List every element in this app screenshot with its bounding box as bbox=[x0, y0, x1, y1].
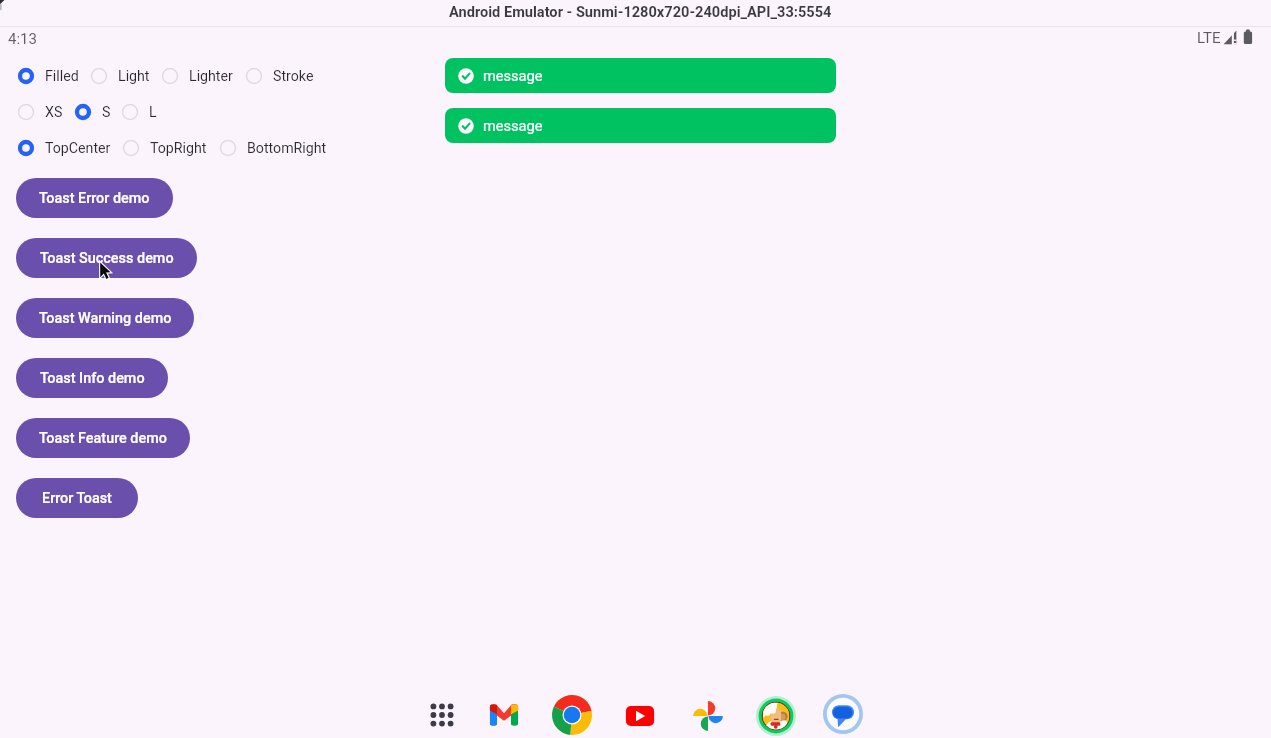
staticText: 4:13 bbox=[8, 30, 37, 48]
button[interactable]: Toast Success demo bbox=[16, 238, 197, 278]
staticText: TopRight bbox=[150, 140, 207, 157]
staticText: Android Emulator - Sunmi-1280x720-240dpi… bbox=[449, 3, 832, 20]
button[interactable]: Error Toast bbox=[16, 478, 138, 518]
button[interactable]: Messages bbox=[817, 688, 869, 738]
staticText: Filled bbox=[45, 68, 79, 85]
button[interactable]: TopCenter bbox=[15, 137, 111, 159]
button[interactable]: Chrome bbox=[546, 689, 598, 738]
staticText: Light bbox=[118, 68, 150, 85]
button[interactable]: All apps bbox=[416, 689, 468, 738]
button[interactable]: message bbox=[445, 108, 836, 143]
staticText: Toast Error demo bbox=[39, 190, 150, 207]
button[interactable]: Photos bbox=[682, 690, 734, 738]
staticText: Toast Feature demo bbox=[39, 430, 167, 447]
button[interactable]: XS bbox=[15, 101, 63, 123]
other: Battery bbox=[1243, 29, 1254, 45]
button[interactable]: Filled bbox=[15, 65, 79, 87]
staticText: Toast Info demo bbox=[40, 370, 145, 387]
staticText: Toast Warning demo bbox=[39, 310, 172, 327]
staticText: TopCenter bbox=[45, 140, 111, 157]
staticText: message bbox=[483, 67, 543, 84]
staticText: S bbox=[102, 104, 111, 121]
staticText: XS bbox=[45, 104, 63, 121]
button[interactable]: BottomRight bbox=[217, 137, 327, 159]
staticText: LTE bbox=[1197, 29, 1221, 47]
button[interactable]: Toast Warning demo bbox=[16, 298, 194, 338]
button[interactable]: message bbox=[445, 58, 836, 93]
button[interactable]: TopRight bbox=[120, 137, 207, 159]
staticText: Error Toast bbox=[42, 490, 112, 507]
other: Mobile signal bbox=[1223, 29, 1238, 45]
staticText: Stroke bbox=[273, 68, 314, 85]
button[interactable]: Light bbox=[88, 65, 150, 87]
button[interactable]: Lighter bbox=[159, 65, 233, 87]
staticText: L bbox=[149, 104, 157, 121]
button[interactable]: Toast Info demo bbox=[16, 358, 168, 398]
staticText: Lighter bbox=[189, 68, 233, 85]
button[interactable]: L bbox=[119, 101, 157, 123]
button[interactable]: Cooking game bbox=[750, 690, 802, 738]
staticText: Toast Success demo bbox=[40, 250, 174, 267]
button[interactable]: Toast Error demo bbox=[16, 178, 173, 218]
button[interactable]: Toast Feature demo bbox=[16, 418, 190, 458]
button[interactable]: Stroke bbox=[243, 65, 314, 87]
button[interactable]: Gmail bbox=[478, 689, 530, 738]
staticText: BottomRight bbox=[247, 140, 327, 157]
staticText: message bbox=[483, 117, 543, 134]
button[interactable]: S bbox=[72, 101, 111, 123]
button[interactable]: YouTube bbox=[614, 690, 666, 738]
